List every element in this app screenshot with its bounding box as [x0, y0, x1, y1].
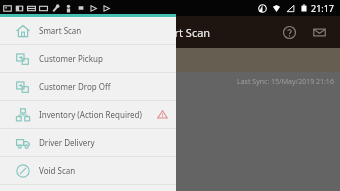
button[interactable]: Void Scan	[0, 157, 176, 184]
staticText: 21:17	[311, 2, 335, 14]
button[interactable]: Customer Pickup	[0, 45, 176, 72]
staticText: Last Sync: 15/May/2019 21:16	[237, 77, 334, 87]
button[interactable]: Inventory (Action Required)	[0, 101, 176, 128]
staticText: Inventory (Action Required)	[39, 109, 142, 120]
staticText: Smart Scan	[152, 25, 211, 40]
staticText: Driver Delivery	[39, 137, 95, 148]
staticText: Smart Scan	[39, 25, 82, 36]
button[interactable]: Smart Scan	[0, 17, 176, 44]
button[interactable]: Driver Delivery	[0, 129, 176, 156]
staticText: Void Scan	[39, 165, 76, 176]
staticText: Customer Pickup	[39, 53, 103, 64]
staticText: Customer Drop Off	[39, 81, 111, 92]
button[interactable]: Customer Drop Off	[0, 73, 176, 100]
button[interactable]: Messages	[306, 19, 332, 45]
button[interactable]: Help	[276, 19, 302, 45]
